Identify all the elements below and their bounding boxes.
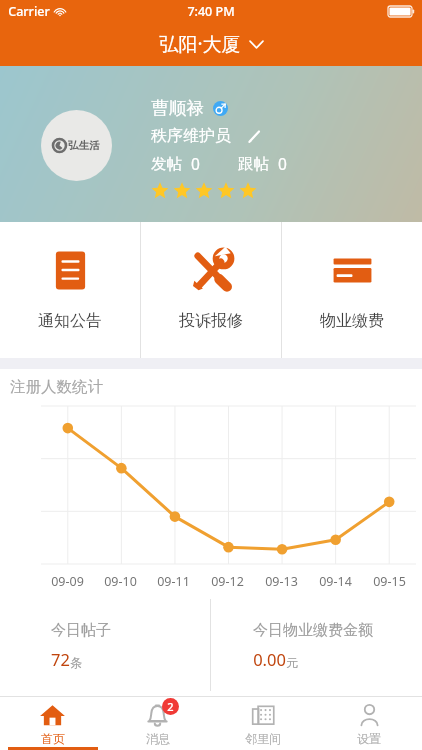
staticText: Carrier (8, 3, 50, 20)
staticText: 设置 (357, 731, 381, 746)
staticText: 通知公告 (38, 311, 102, 331)
button[interactable]: 投诉报修 (141, 222, 281, 358)
button[interactable]: 2 (105, 697, 210, 750)
staticText: 09-14 (319, 573, 352, 590)
staticText: 09-12 (211, 573, 244, 590)
staticText: 09-10 (104, 573, 137, 590)
staticText: 曹顺禄 (151, 97, 204, 119)
button[interactable]: Edit role (245, 127, 263, 145)
staticText: 7:40 PM (187, 3, 235, 20)
button[interactable]: 弘阳·大厦 (0, 22, 422, 66)
button[interactable]: 通知公告 (0, 222, 140, 358)
staticText: 09-09 (51, 573, 84, 590)
button[interactable]: 今日物业缴费金额 (211, 599, 413, 691)
button[interactable]: 首页 (0, 697, 105, 750)
button[interactable]: 今日帖子 (9, 599, 210, 691)
button[interactable]: 邻里间 (210, 697, 316, 750)
staticText: 09-13 (265, 573, 298, 590)
button[interactable]: 物业缴费 (282, 222, 422, 358)
staticText: 0 (191, 153, 200, 174)
button[interactable]: Profile avatar (41, 110, 112, 181)
staticText: 物业缴费 (320, 311, 384, 331)
staticText: 2 (167, 699, 174, 714)
staticText: 消息 (146, 731, 170, 746)
staticText: 首页 (41, 731, 65, 746)
staticText: 发帖 (151, 154, 182, 174)
staticText: 今日物业缴费金额 (253, 621, 373, 640)
staticText: 跟帖 (238, 154, 269, 174)
staticText: 条 (70, 655, 82, 670)
staticText: 弘阳·大厦 (159, 31, 241, 57)
staticText: 元 (286, 655, 298, 670)
button[interactable]: 设置 (316, 697, 422, 750)
staticText: 09-11 (157, 573, 190, 590)
staticText: 0 (278, 153, 287, 174)
staticText: 注册人数统计 (10, 377, 103, 397)
staticText: 投诉报修 (179, 311, 243, 331)
staticText: 秩序维护员 (151, 126, 231, 146)
staticText: 今日帖子 (51, 621, 111, 640)
staticText: 72 (51, 648, 70, 670)
staticText: 弘生活 (68, 139, 100, 152)
staticText: 09-15 (373, 573, 406, 590)
staticText: 0.00 (253, 648, 286, 670)
staticText: 邻里间 (245, 731, 281, 746)
